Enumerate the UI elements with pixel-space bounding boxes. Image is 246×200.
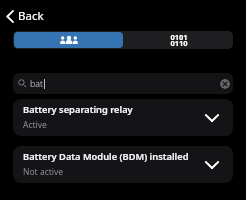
button[interactable]: Back xyxy=(0,4,48,28)
staticText: Back xyxy=(18,8,44,24)
staticText: Not active xyxy=(23,166,64,178)
button[interactable]: Expand xyxy=(200,107,224,129)
button[interactable]: Battery separating relay xyxy=(13,99,233,136)
button[interactable]: Expand xyxy=(200,154,224,176)
button[interactable]: Binary data xyxy=(123,32,232,48)
staticText: bat xyxy=(30,78,43,90)
button[interactable]: Clear search xyxy=(220,79,230,89)
staticText: Battery separating relay xyxy=(23,103,133,116)
staticText: Battery Data Module (BDM) installed xyxy=(23,150,189,163)
button[interactable]: Group xyxy=(14,32,123,48)
button[interactable]: Battery Data Module (BDM) installed xyxy=(13,146,233,183)
staticText: Active xyxy=(23,119,47,131)
